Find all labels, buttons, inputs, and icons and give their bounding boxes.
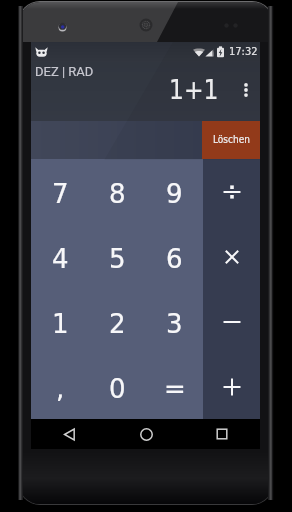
staticText: 7 xyxy=(52,179,69,209)
button[interactable]: 9 xyxy=(146,159,203,224)
staticText: DEZ | RAD xyxy=(35,64,94,79)
button[interactable]: 7 xyxy=(31,159,89,224)
staticText: 1+1 xyxy=(169,75,219,105)
button[interactable]: , xyxy=(31,354,89,419)
button[interactable]: 4 xyxy=(31,224,89,289)
button[interactable]: 0 xyxy=(89,354,146,419)
staticText: 2 xyxy=(109,309,126,339)
staticText: 8 xyxy=(109,179,126,209)
staticText: , xyxy=(56,374,65,404)
button[interactable]: 6 xyxy=(146,224,203,289)
staticText: 4 xyxy=(52,244,69,274)
button[interactable]: 1 xyxy=(31,289,89,354)
button[interactable]: 3 xyxy=(146,289,203,354)
button[interactable]: Add xyxy=(203,354,260,419)
staticText: 1 xyxy=(52,309,69,339)
button[interactable]: Back xyxy=(31,419,108,449)
button[interactable]: 2 xyxy=(89,289,146,354)
staticText: 3 xyxy=(166,309,183,339)
staticText: 17:32 xyxy=(229,45,258,58)
staticText: 0 xyxy=(109,374,126,404)
staticText: 6 xyxy=(166,244,183,274)
staticText: 5 xyxy=(109,244,126,274)
button[interactable]: Multiply xyxy=(203,224,260,289)
staticText: = xyxy=(164,374,186,404)
button[interactable]: Recents xyxy=(184,419,260,449)
button[interactable]: Löschen xyxy=(202,121,260,159)
button[interactable]: More options xyxy=(231,73,261,107)
button[interactable]: Subtract xyxy=(203,289,260,354)
button[interactable]: Home xyxy=(108,419,184,449)
button[interactable]: 8 xyxy=(89,159,146,224)
button[interactable]: = xyxy=(146,354,203,419)
staticText: 9 xyxy=(166,179,183,209)
button[interactable]: Divide xyxy=(203,159,260,224)
button[interactable]: 5 xyxy=(89,224,146,289)
staticText: Löschen xyxy=(213,134,250,146)
